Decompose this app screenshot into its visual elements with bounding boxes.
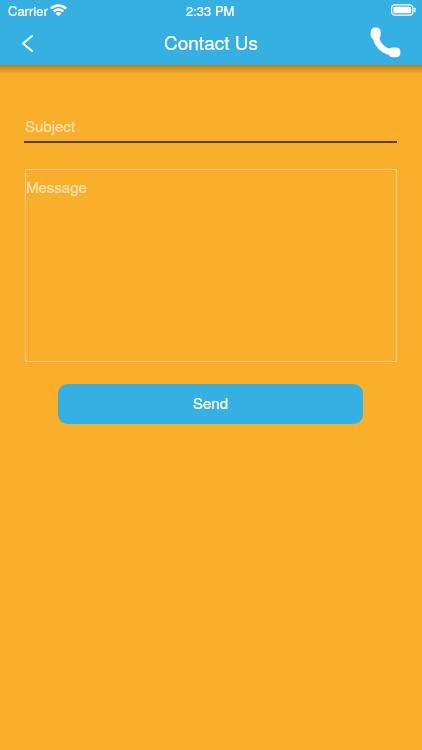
staticText: 2:33 PM [186, 1, 235, 20]
staticText: Message [26, 176, 87, 197]
button[interactable]: Call [365, 20, 407, 62]
staticText: Contact Us [0, 28, 422, 55]
staticText: Subject [25, 115, 76, 136]
button[interactable]: Back [6, 22, 48, 64]
staticText: Send [193, 392, 229, 413]
staticText: Carrier [8, 1, 48, 20]
button[interactable]: Send [58, 384, 363, 424]
